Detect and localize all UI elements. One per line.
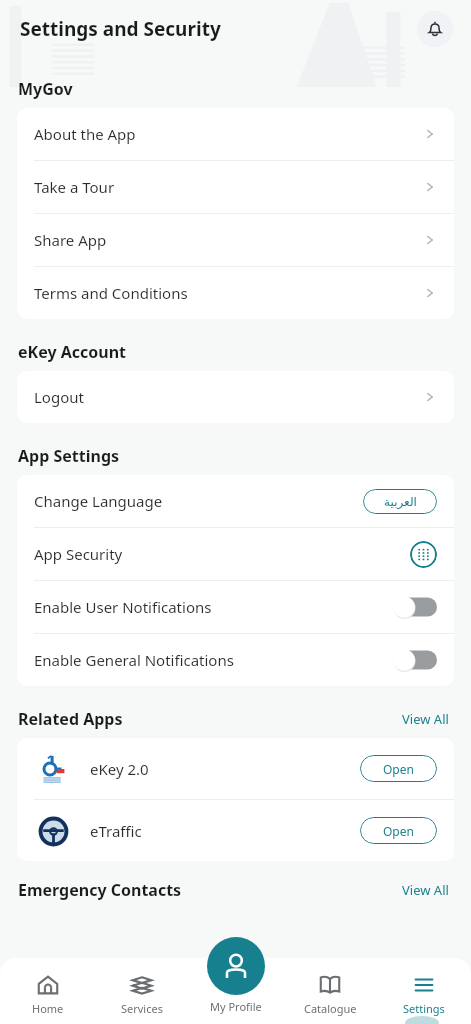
staticText: Emergency Contacts <box>18 879 182 901</box>
button[interactable]: eKey 2.0 <box>17 738 454 799</box>
button[interactable]: Services <box>95 958 189 1024</box>
button[interactable]: App Security <box>17 528 454 580</box>
staticText: Change Language <box>34 491 163 511</box>
staticText: eTraffic <box>90 821 142 841</box>
button[interactable]: eTraffic <box>17 800 454 861</box>
staticText: App Security <box>34 544 123 564</box>
button[interactable]: Home <box>0 958 95 1024</box>
staticText: Share App <box>34 230 107 250</box>
staticText: Settings and Security <box>20 16 221 42</box>
button[interactable]: Change Language <box>17 475 454 527</box>
button[interactable]: My Profile <box>207 937 265 995</box>
staticText: View All <box>402 881 449 899</box>
button[interactable]: View All <box>398 706 453 732</box>
staticText: Enable General Notifications <box>34 650 234 670</box>
staticText: Home <box>32 1001 64 1016</box>
button[interactable]: Enable User Notifications <box>17 581 454 633</box>
button[interactable]: العربية <box>363 489 437 514</box>
button[interactable]: Catalogue <box>283 958 377 1024</box>
staticText: Open <box>383 823 414 839</box>
button[interactable]: Share App <box>17 214 454 266</box>
staticText: Related Apps <box>18 708 123 730</box>
staticText: Enable User Notifications <box>34 597 212 617</box>
staticText: العربية <box>384 495 417 509</box>
button[interactable]: Open <box>360 755 437 782</box>
staticText: Open <box>383 761 414 777</box>
button[interactable]: Terms and Conditions <box>17 267 454 319</box>
button[interactable] <box>393 596 437 618</box>
staticText: eKey Account <box>18 341 127 363</box>
button[interactable]: Logout <box>17 371 454 423</box>
button[interactable]: Open <box>360 817 437 844</box>
button[interactable]: Notifications <box>417 11 453 47</box>
staticText: Logout <box>34 387 84 407</box>
staticText: About the App <box>34 124 136 144</box>
button[interactable] <box>393 649 437 671</box>
button[interactable]: App Security keypad <box>410 541 437 568</box>
button[interactable]: Take a Tour <box>17 161 454 213</box>
staticText: App Settings <box>18 445 120 467</box>
staticText: eKey 2.0 <box>90 759 149 779</box>
staticText: Catalogue <box>304 1001 357 1016</box>
staticText: Services <box>121 1001 163 1016</box>
staticText: My Profile <box>210 999 262 1014</box>
button[interactable]: View All <box>398 877 453 903</box>
button[interactable]: Settings <box>377 958 471 1024</box>
staticText: Terms and Conditions <box>34 283 188 303</box>
staticText: MyGov <box>18 78 73 100</box>
staticText: View All <box>402 710 449 728</box>
button[interactable]: About the App <box>17 108 454 160</box>
button[interactable]: Enable General Notifications <box>17 634 454 686</box>
staticText: Settings <box>403 1001 445 1016</box>
staticText: Take a Tour <box>34 177 115 197</box>
